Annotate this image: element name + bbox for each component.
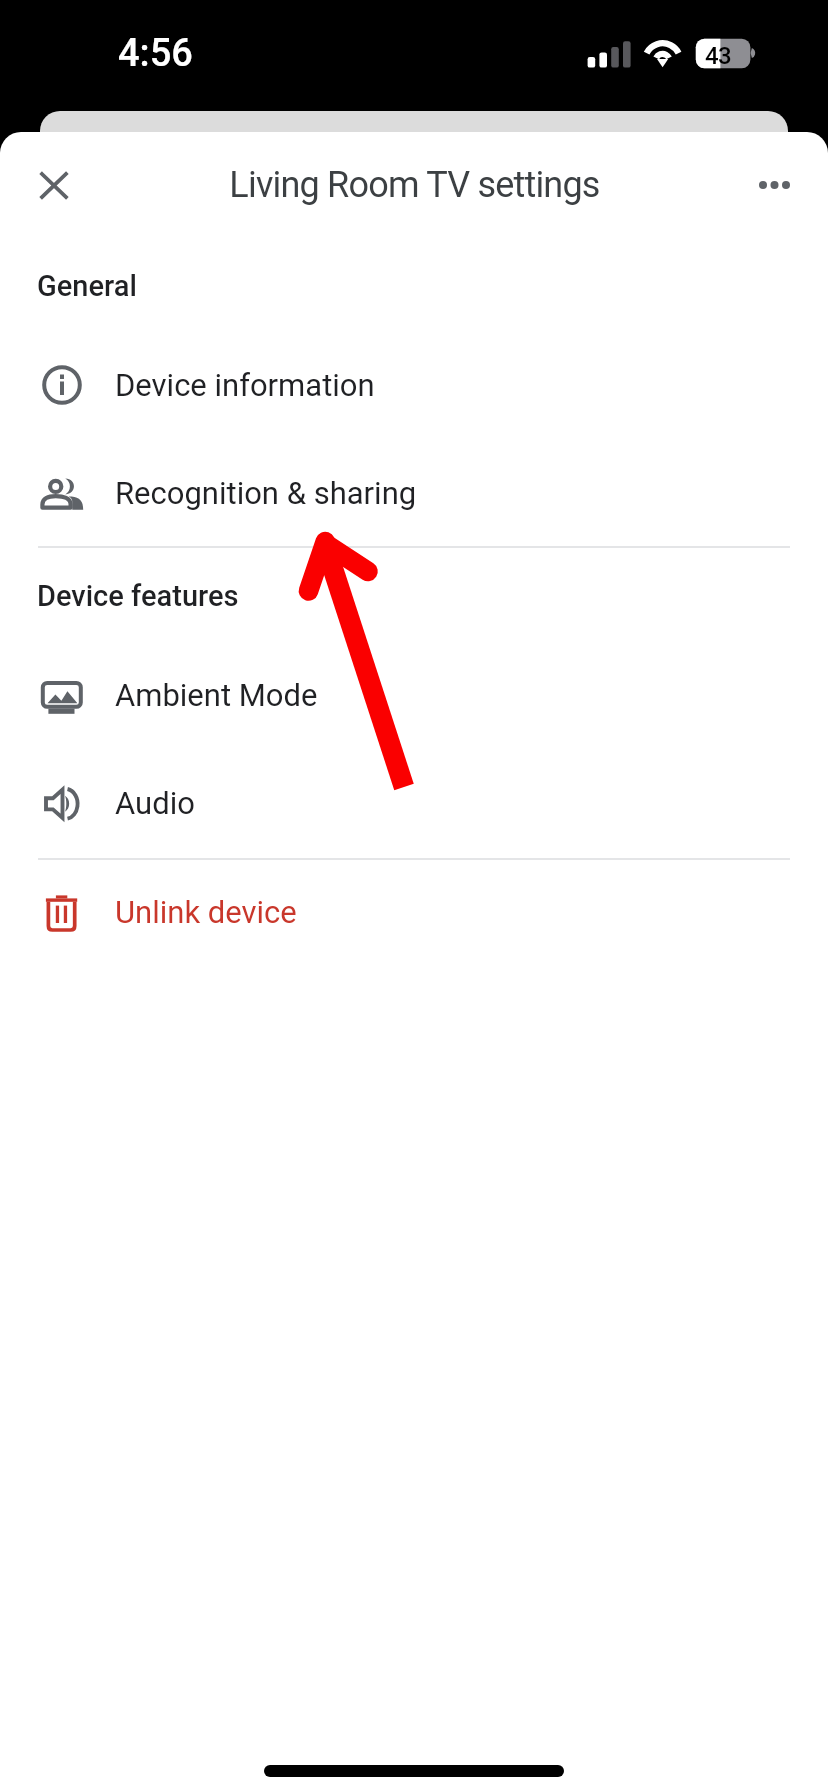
staticText: Ambient Mode	[115, 677, 318, 713]
staticText: Device information	[115, 367, 375, 403]
staticText: Living Room TV settings	[229, 164, 600, 206]
staticText: General	[37, 269, 137, 303]
button[interactable]: Recognition & sharing	[0, 439, 828, 547]
staticText: Recognition & sharing	[115, 475, 417, 511]
button[interactable]: Close	[20, 151, 88, 219]
button[interactable]: More options	[740, 151, 808, 219]
staticText: 4:56	[118, 31, 193, 76]
staticText: Unlink device	[115, 894, 297, 930]
staticText: 43	[705, 42, 732, 70]
button[interactable]: Ambient Mode	[0, 641, 828, 749]
button[interactable]: Device information	[0, 331, 828, 439]
staticText: Device features	[37, 579, 239, 613]
button[interactable]: Unlink device	[0, 858, 828, 966]
button[interactable]: Audio	[0, 749, 828, 857]
staticText: Audio	[115, 785, 195, 821]
